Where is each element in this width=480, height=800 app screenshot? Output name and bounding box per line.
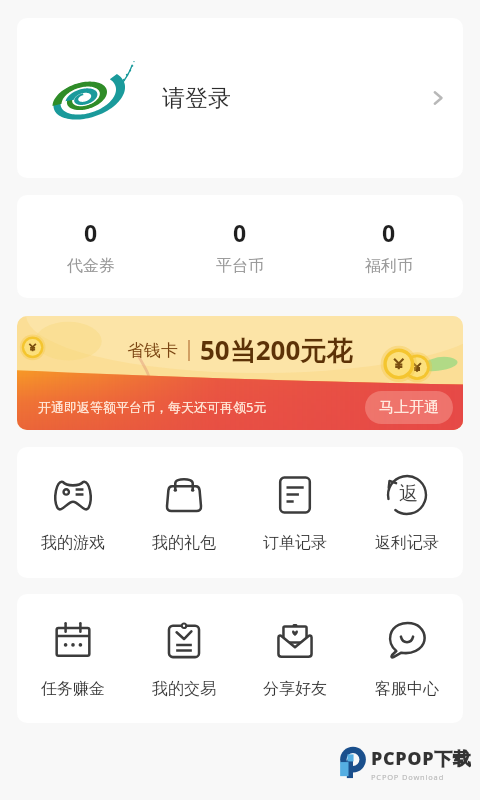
staticText: 50当200元花 <box>200 332 353 368</box>
button[interactable]: 任务赚金 <box>17 619 128 699</box>
button[interactable]: 请登录 <box>17 18 463 178</box>
staticText: 返利记录 <box>375 533 439 553</box>
staticText: PCPOP下载 <box>371 746 472 771</box>
button[interactable]: 订单记录 <box>239 473 351 553</box>
staticText: 我的游戏 <box>41 533 105 553</box>
staticText: 返 <box>399 482 418 506</box>
staticText: 0 <box>382 217 396 248</box>
button[interactable]: 我的交易 <box>128 619 239 699</box>
button[interactable]: 客服中心 <box>351 619 463 699</box>
button[interactable]: 分享好友 <box>239 619 351 699</box>
staticText: 订单记录 <box>263 533 327 553</box>
staticText: 开通即返等额平台币，每天还可再领5元 <box>38 398 267 416</box>
staticText: 马上开通 <box>379 398 439 417</box>
staticText: 平台币 <box>216 256 264 276</box>
staticText: 代金券 <box>67 256 115 276</box>
button[interactable]: 0 <box>17 217 165 276</box>
button[interactable]: 返 <box>351 473 463 553</box>
staticText: 福利币 <box>365 256 413 276</box>
button[interactable]: 省钱卡 <box>17 316 463 430</box>
staticText: 0 <box>233 217 247 248</box>
staticText: 我的交易 <box>152 679 216 699</box>
staticText: 请登录 <box>162 84 231 113</box>
staticText: 0 <box>84 217 98 248</box>
button[interactable]: 我的游戏 <box>17 473 128 553</box>
staticText: 省钱卡 <box>127 340 178 361</box>
button[interactable]: 0 <box>314 217 463 276</box>
button[interactable]: 0 <box>165 217 314 276</box>
staticText: 分享好友 <box>263 679 327 699</box>
staticText: PCPOP Download <box>371 772 445 782</box>
staticText: 任务赚金 <box>41 679 105 699</box>
staticText: 我的礼包 <box>152 533 216 553</box>
staticText: 客服中心 <box>375 679 439 699</box>
button[interactable]: 马上开通 <box>379 398 439 417</box>
button[interactable]: 我的礼包 <box>128 473 239 553</box>
